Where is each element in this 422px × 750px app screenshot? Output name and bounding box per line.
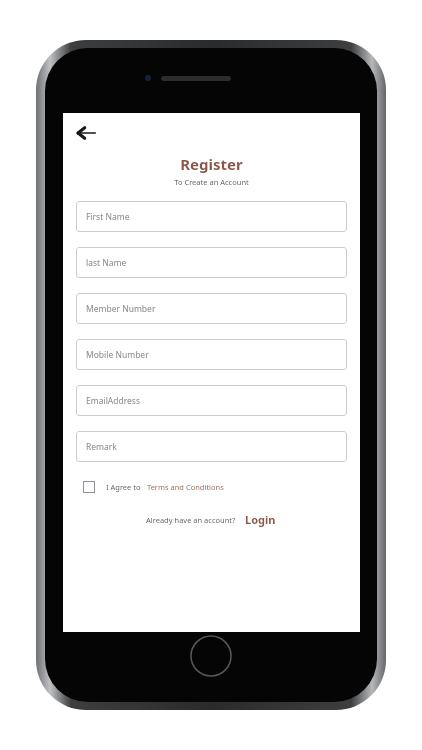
staticText: Member Number — [86, 303, 156, 315]
button[interactable]: First Name — [76, 201, 347, 232]
button[interactable]: Back — [71, 118, 101, 148]
button[interactable]: Mobile Number — [76, 339, 347, 370]
staticText: EmailAddress — [86, 395, 140, 407]
button[interactable]: EmailAddress — [76, 385, 347, 416]
staticText: Register — [63, 154, 360, 174]
staticText: To Create an Account — [63, 177, 360, 187]
staticText: I Agree to — [106, 482, 141, 492]
button[interactable]: Login — [244, 511, 277, 528]
button[interactable]: I Agree to Terms and Conditions — [78, 476, 100, 498]
button[interactable]: Terms and Conditions — [147, 482, 224, 492]
staticText: Terms and Conditions — [147, 482, 224, 492]
staticText: Already have an account? — [146, 515, 236, 525]
button[interactable]: Member Number — [76, 293, 347, 324]
staticText: Login — [245, 512, 276, 527]
other: Home — [189, 634, 233, 678]
button[interactable]: Remark — [76, 431, 347, 462]
staticText: Mobile Number — [86, 349, 149, 361]
staticText: Remark — [86, 441, 117, 453]
staticText: First Name — [86, 211, 130, 223]
staticText: last Name — [86, 257, 127, 269]
button[interactable]: last Name — [76, 247, 347, 278]
